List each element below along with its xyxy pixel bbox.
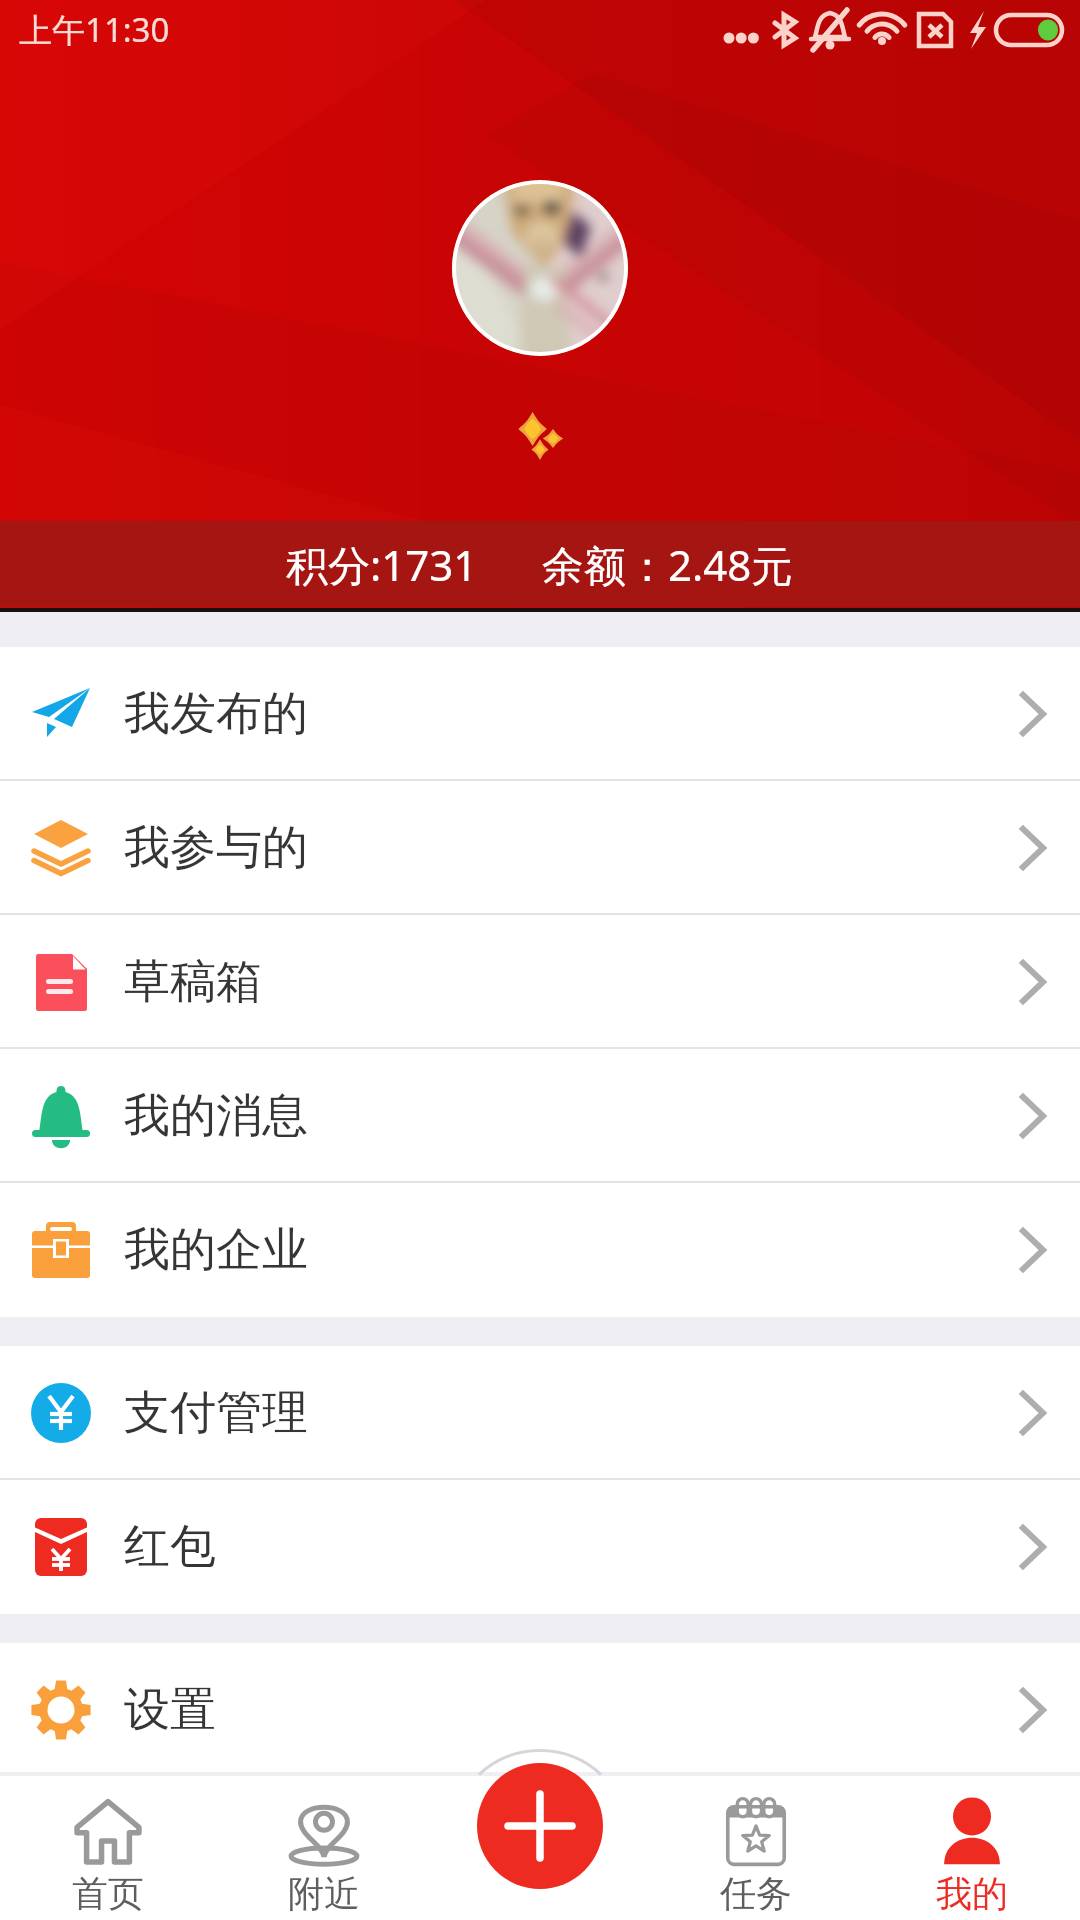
staticText: 我参与的 (124, 819, 308, 877)
staticText: 设置 (124, 1681, 216, 1739)
button[interactable]: 设置 (0, 1643, 1080, 1777)
button[interactable]: 首页 (0, 1776, 216, 1916)
staticText: 我的企业 (124, 1221, 308, 1279)
button[interactable]: Profile photo (452, 180, 628, 356)
staticText: 上午11:30 (19, 7, 170, 52)
button[interactable]: Add (477, 1763, 603, 1889)
button[interactable]: 任务 (648, 1776, 864, 1916)
button[interactable]: 支付管理 (0, 1346, 1080, 1480)
staticText: 附近 (288, 1871, 360, 1916)
button[interactable]: 我发布的 (0, 647, 1080, 781)
staticText: 草稿箱 (124, 953, 262, 1011)
staticText: 任务 (720, 1871, 792, 1916)
staticText: 余额：2.48元 (542, 536, 794, 593)
staticText: 支付管理 (124, 1384, 308, 1442)
button[interactable]: 红包 (0, 1480, 1080, 1614)
button[interactable]: 我的 (864, 1776, 1080, 1916)
staticText: 红包 (124, 1518, 216, 1576)
button[interactable]: 附近 (216, 1776, 432, 1916)
staticText: 我的消息 (124, 1087, 308, 1145)
staticText: 我的 (936, 1871, 1008, 1916)
button[interactable]: 草稿箱 (0, 915, 1080, 1049)
staticText: 积分:1731 (286, 536, 478, 593)
button[interactable]: 我参与的 (0, 781, 1080, 915)
button[interactable]: 我的企业 (0, 1183, 1080, 1317)
staticText: 首页 (72, 1871, 144, 1916)
button[interactable]: 我的消息 (0, 1049, 1080, 1183)
staticText: 我发布的 (124, 685, 308, 743)
